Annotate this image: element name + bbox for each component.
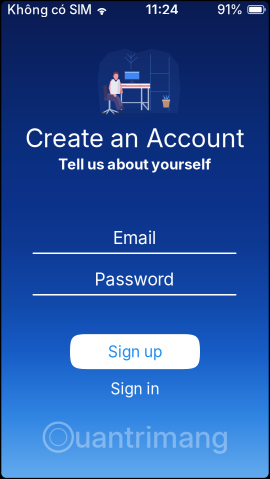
staticText: Password (94, 269, 174, 290)
staticText: Email (113, 227, 156, 248)
staticText: Create an Account (25, 123, 244, 153)
staticText: uantrimang (74, 419, 229, 455)
staticText: 91% (217, 2, 243, 17)
staticText: Sign up (108, 342, 162, 361)
staticText: Sign in (110, 379, 159, 398)
button[interactable]: Sign up (70, 334, 200, 369)
button[interactable]: Sign in (95, 380, 175, 397)
staticText: Tell us about yourself (58, 155, 211, 173)
staticText: 11:24 (146, 1, 179, 18)
staticText: Không có SIM (7, 2, 92, 17)
